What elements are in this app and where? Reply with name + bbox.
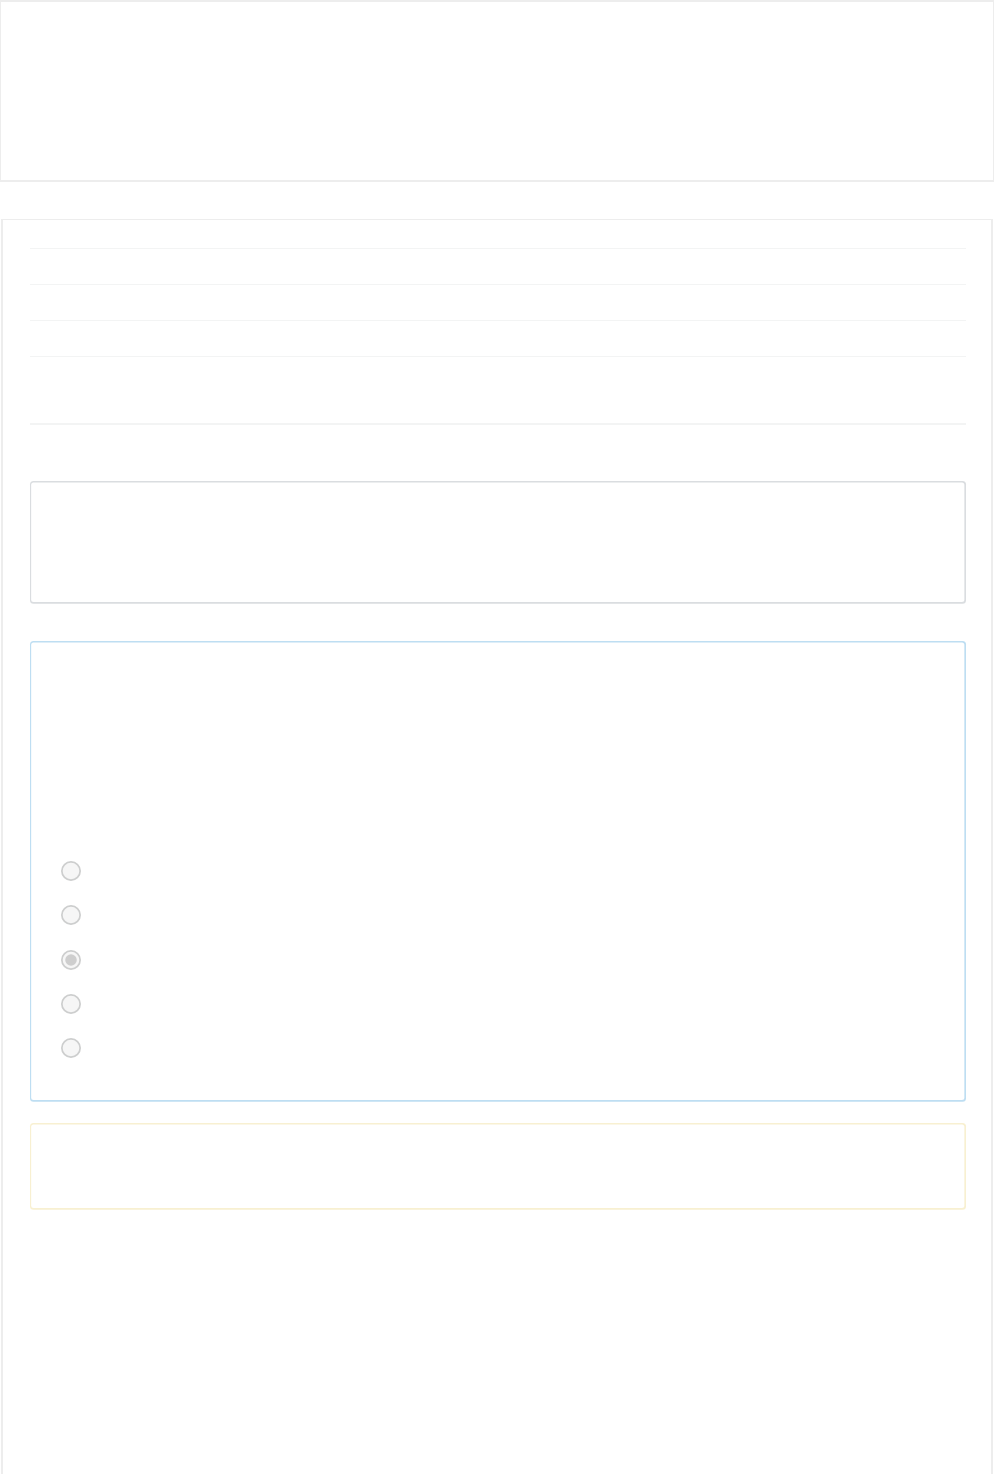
button[interactable]: Option 2 (61, 905, 81, 925)
button[interactable]: Option 1 (61, 861, 81, 881)
button[interactable]: Short answer question (30, 481, 966, 603)
button[interactable]: Option 4 (61, 994, 81, 1014)
button[interactable]: Option 5 (61, 1038, 81, 1058)
button[interactable]: Notice (30, 1123, 966, 1209)
button[interactable]: Option 3, selected (61, 950, 81, 970)
